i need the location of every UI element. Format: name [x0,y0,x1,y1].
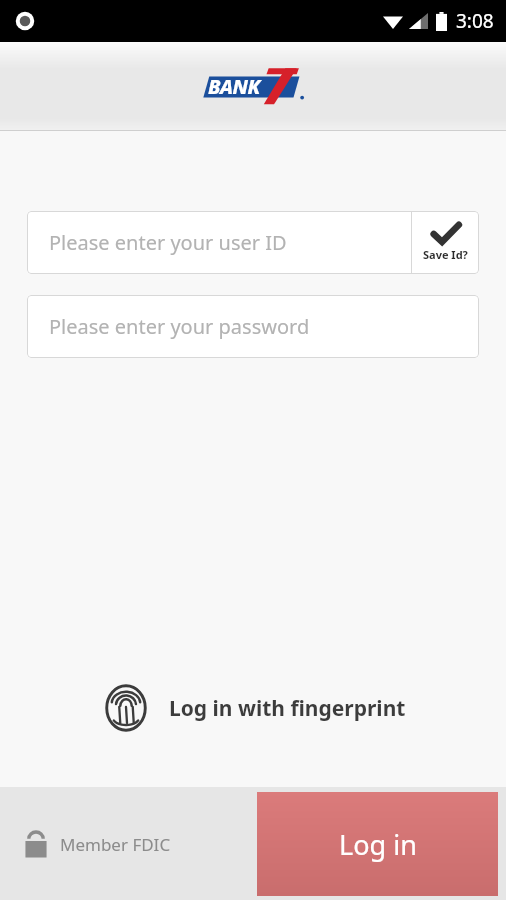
button[interactable]: Please enter your user ID [27,211,411,274]
staticText: 3:08 [456,8,494,34]
button[interactable]: Save Id [412,211,479,274]
staticText: Log in [339,826,417,863]
staticText: Please enter your password [49,313,310,340]
button[interactable]: Please enter your password [27,295,479,358]
staticText: BANK [208,73,260,100]
staticText: Log in with fingerprint [169,694,406,723]
staticText: Member FDIC [60,833,171,856]
staticText: Save Id? [423,247,468,262]
staticText: Please enter your user ID [49,229,287,256]
button[interactable]: Log in with fingerprint [97,679,410,737]
button[interactable]: Log in [257,792,498,896]
